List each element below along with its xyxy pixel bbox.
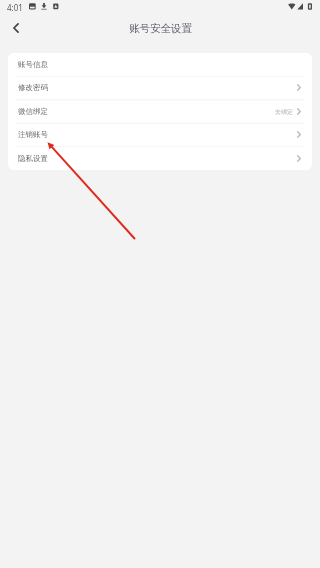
button[interactable]: 微信绑定	[8, 100, 312, 123]
staticText: 隐私设置	[18, 154, 48, 163]
staticText: 账号信息	[18, 60, 48, 69]
staticText: 去绑定	[275, 108, 293, 116]
button[interactable]: 账号信息	[8, 53, 312, 76]
button[interactable]: 隐私设置	[8, 147, 312, 170]
staticText: 注销账号	[18, 130, 48, 139]
button[interactable]: Back	[0, 14, 32, 42]
staticText: 修改密码	[18, 83, 48, 92]
staticText: 账号安全设置	[129, 22, 192, 35]
button[interactable]: 注销账号	[8, 123, 312, 146]
staticText: 微信绑定	[18, 107, 48, 116]
button[interactable]: 修改密码	[8, 76, 312, 99]
staticText: 4:01	[7, 2, 23, 13]
